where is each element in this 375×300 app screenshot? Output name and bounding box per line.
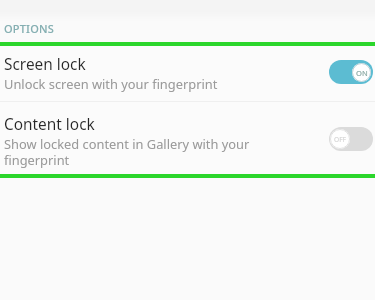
- staticText: Unlock screen with your fingerprint: [4, 75, 218, 93]
- button[interactable]: Content lock: [0, 105, 375, 177]
- button[interactable]: Screen lock: [0, 46, 375, 101]
- staticText: OPTIONS: [4, 21, 55, 36]
- staticText: ON: [356, 68, 368, 78]
- button[interactable]: Content lock toggle: [329, 127, 373, 151]
- staticText: Screen lock: [4, 54, 86, 75]
- staticText: OFF: [334, 135, 346, 144]
- staticText: Content lock: [4, 114, 95, 135]
- staticText: Show locked content in Gallery with your…: [4, 135, 262, 169]
- button[interactable]: Screen lock toggle: [329, 60, 373, 84]
